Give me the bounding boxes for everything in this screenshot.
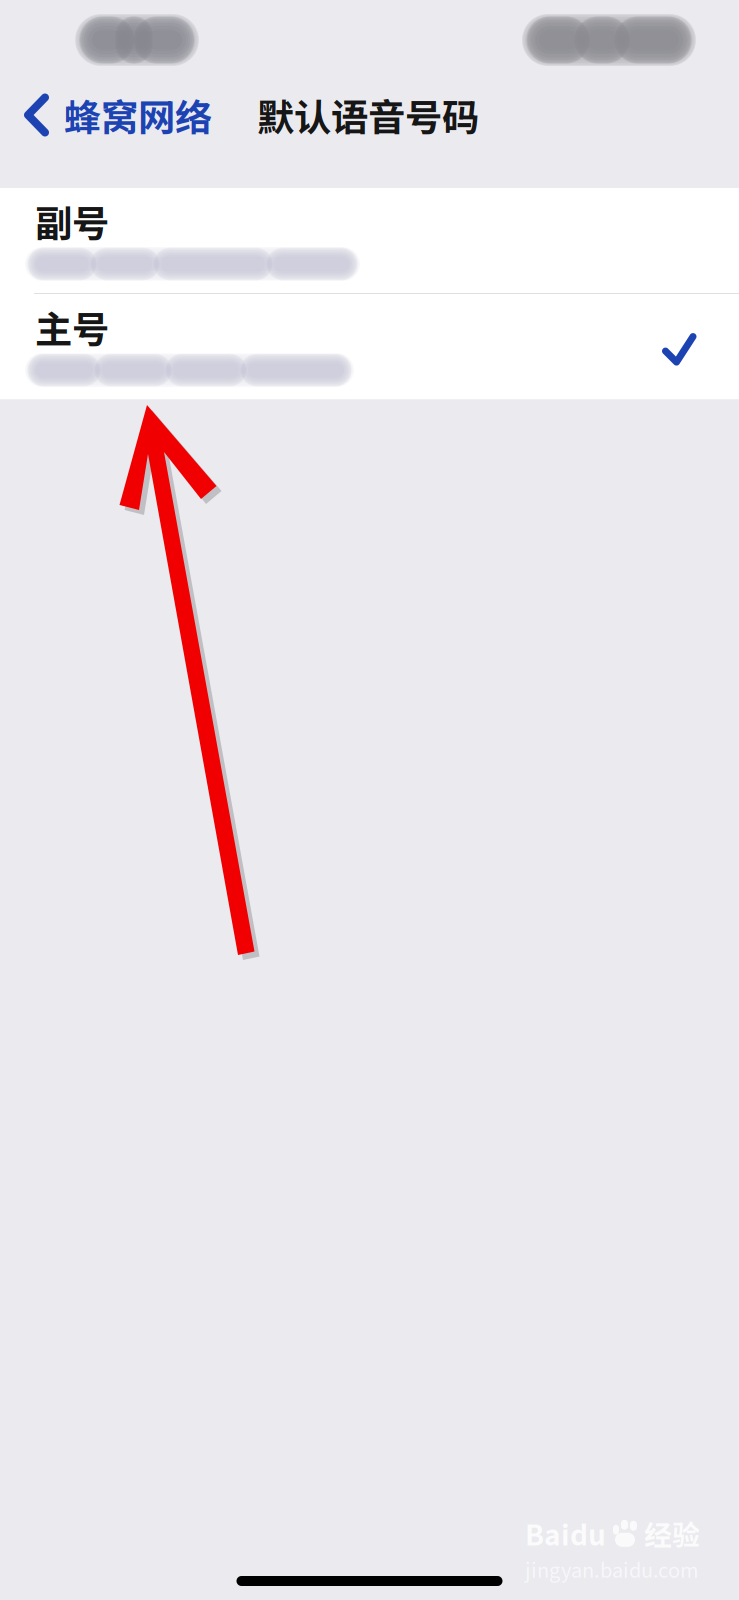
staticText: Baidu [525, 1513, 606, 1553]
staticText: 蜂窝网络 [64, 88, 212, 142]
staticText: 主号 [35, 300, 109, 354]
staticText: 副号 [35, 194, 109, 248]
button[interactable]: 蜂窝网络 [0, 88, 212, 142]
button[interactable]: 主号 [0, 294, 739, 399]
staticText: jingyan.baidu.com [525, 1554, 699, 1583]
staticText: 经验 [644, 1513, 700, 1553]
button[interactable]: 副号 [0, 188, 739, 293]
staticText: 默认语音号码 [257, 88, 479, 142]
